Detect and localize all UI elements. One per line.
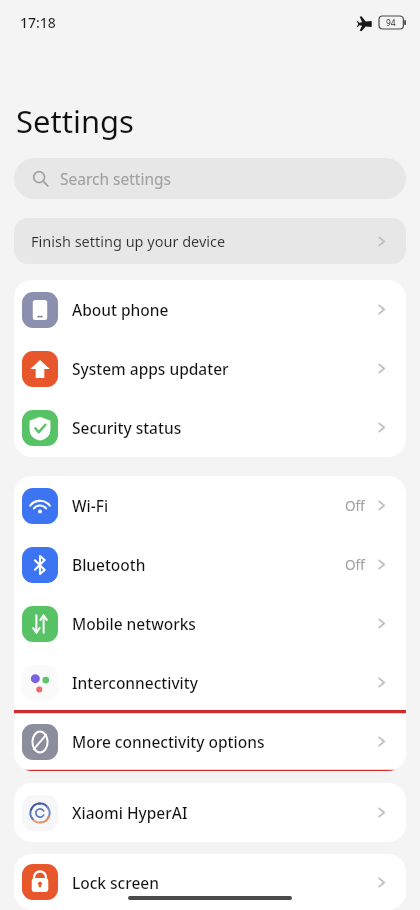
button[interactable]: Finish setting up your device xyxy=(14,218,406,264)
staticText: Wi-Fi xyxy=(72,495,109,516)
other: Open xyxy=(374,875,389,890)
other: Open xyxy=(374,734,389,749)
button[interactable]: Lock screen xyxy=(14,854,406,910)
button[interactable]: Wi-Fi xyxy=(14,476,406,535)
staticText: Security status xyxy=(72,417,182,438)
staticText: System apps updater xyxy=(72,358,229,379)
staticText: 94 xyxy=(386,17,396,29)
staticText: Bluetooth xyxy=(72,554,146,575)
other: Open xyxy=(374,361,389,376)
button[interactable]: More connectivity options xyxy=(14,712,406,771)
button[interactable]: System apps updater xyxy=(14,339,406,398)
other: Open xyxy=(374,675,389,690)
button[interactable]: Mobile networks xyxy=(14,594,406,653)
other: Open xyxy=(374,805,389,820)
other: Open xyxy=(374,616,389,631)
button[interactable]: Security status xyxy=(14,398,406,457)
other: Open xyxy=(374,557,389,572)
staticText: Settings xyxy=(16,100,134,142)
staticText: Interconnectivity xyxy=(72,672,198,693)
other: Open xyxy=(374,234,389,249)
staticText: More connectivity options xyxy=(72,731,265,752)
staticText: Lock screen xyxy=(72,872,159,893)
button[interactable]: Xiaomi HyperAI xyxy=(14,783,406,842)
staticText: About phone xyxy=(72,299,169,320)
staticText: 17:18 xyxy=(20,13,56,32)
other: Open xyxy=(374,302,389,317)
other: Open xyxy=(374,498,389,513)
staticText: Off xyxy=(345,556,365,574)
staticText: Finish setting up your device xyxy=(31,231,226,251)
staticText: Search settings xyxy=(60,168,171,189)
button[interactable]: About phone xyxy=(14,280,406,339)
button[interactable]: Search settings xyxy=(14,158,406,199)
staticText: Off xyxy=(345,497,365,515)
staticText: Xiaomi HyperAI xyxy=(72,802,188,823)
button[interactable]: Bluetooth xyxy=(14,535,406,594)
button[interactable]: Interconnectivity xyxy=(14,653,406,712)
other: Open xyxy=(374,420,389,435)
staticText: Mobile networks xyxy=(72,613,196,634)
